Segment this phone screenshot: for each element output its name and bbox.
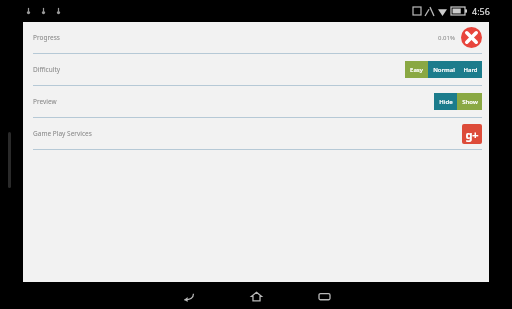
- staticText: Hide: [439, 98, 453, 106]
- staticText: 4:56: [472, 5, 490, 17]
- button[interactable]: Hard: [459, 61, 482, 78]
- staticText: Easy: [410, 66, 423, 74]
- button[interactable]: Game Play Services: [23, 118, 489, 149]
- button[interactable]: Home: [238, 284, 274, 308]
- button[interactable]: Show: [457, 93, 482, 110]
- button[interactable]: Easy: [405, 61, 428, 78]
- button[interactable]: Back: [170, 284, 206, 308]
- staticText: Show: [462, 98, 478, 106]
- button[interactable]: Hide: [434, 93, 457, 110]
- staticText: Progress: [33, 33, 60, 42]
- button[interactable]: Sign in with Google Plus: [462, 124, 482, 144]
- button[interactable]: Recent apps: [306, 284, 342, 308]
- staticText: Preview: [33, 97, 57, 106]
- staticText: 0.01%: [438, 34, 455, 42]
- staticText: Game Play Services: [33, 129, 92, 138]
- staticText: Hard: [463, 66, 478, 74]
- button[interactable]: Preview: [23, 86, 489, 117]
- button[interactable]: Normal: [428, 61, 459, 78]
- button[interactable]: Reset progress: [461, 27, 482, 48]
- staticText: Normal: [433, 66, 455, 74]
- button[interactable]: Progress: [23, 22, 489, 53]
- staticText: Difficulty: [33, 65, 61, 74]
- button[interactable]: Difficulty: [23, 54, 489, 85]
- staticText: g+: [465, 127, 479, 142]
